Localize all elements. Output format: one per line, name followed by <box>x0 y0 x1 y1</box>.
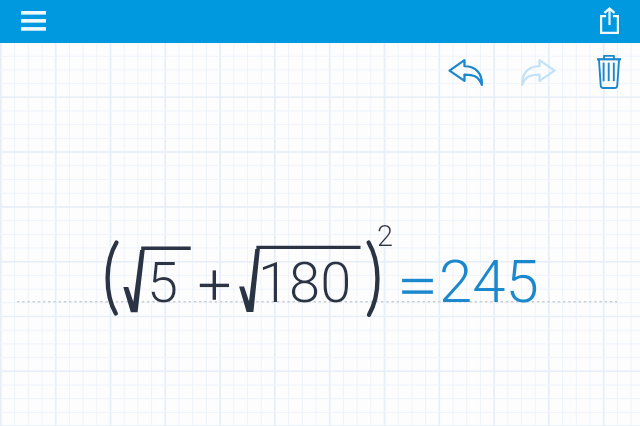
staticText: 5 <box>147 250 179 316</box>
staticText: 2 <box>377 219 394 253</box>
button[interactable]: Redo <box>506 48 570 96</box>
button[interactable]: Delete <box>584 44 634 97</box>
staticText: 180 <box>258 250 352 316</box>
button[interactable]: Undo <box>434 48 498 96</box>
button[interactable]: Menu <box>4 0 62 42</box>
button[interactable]: Share <box>586 0 631 42</box>
staticText: 245 <box>439 246 539 316</box>
